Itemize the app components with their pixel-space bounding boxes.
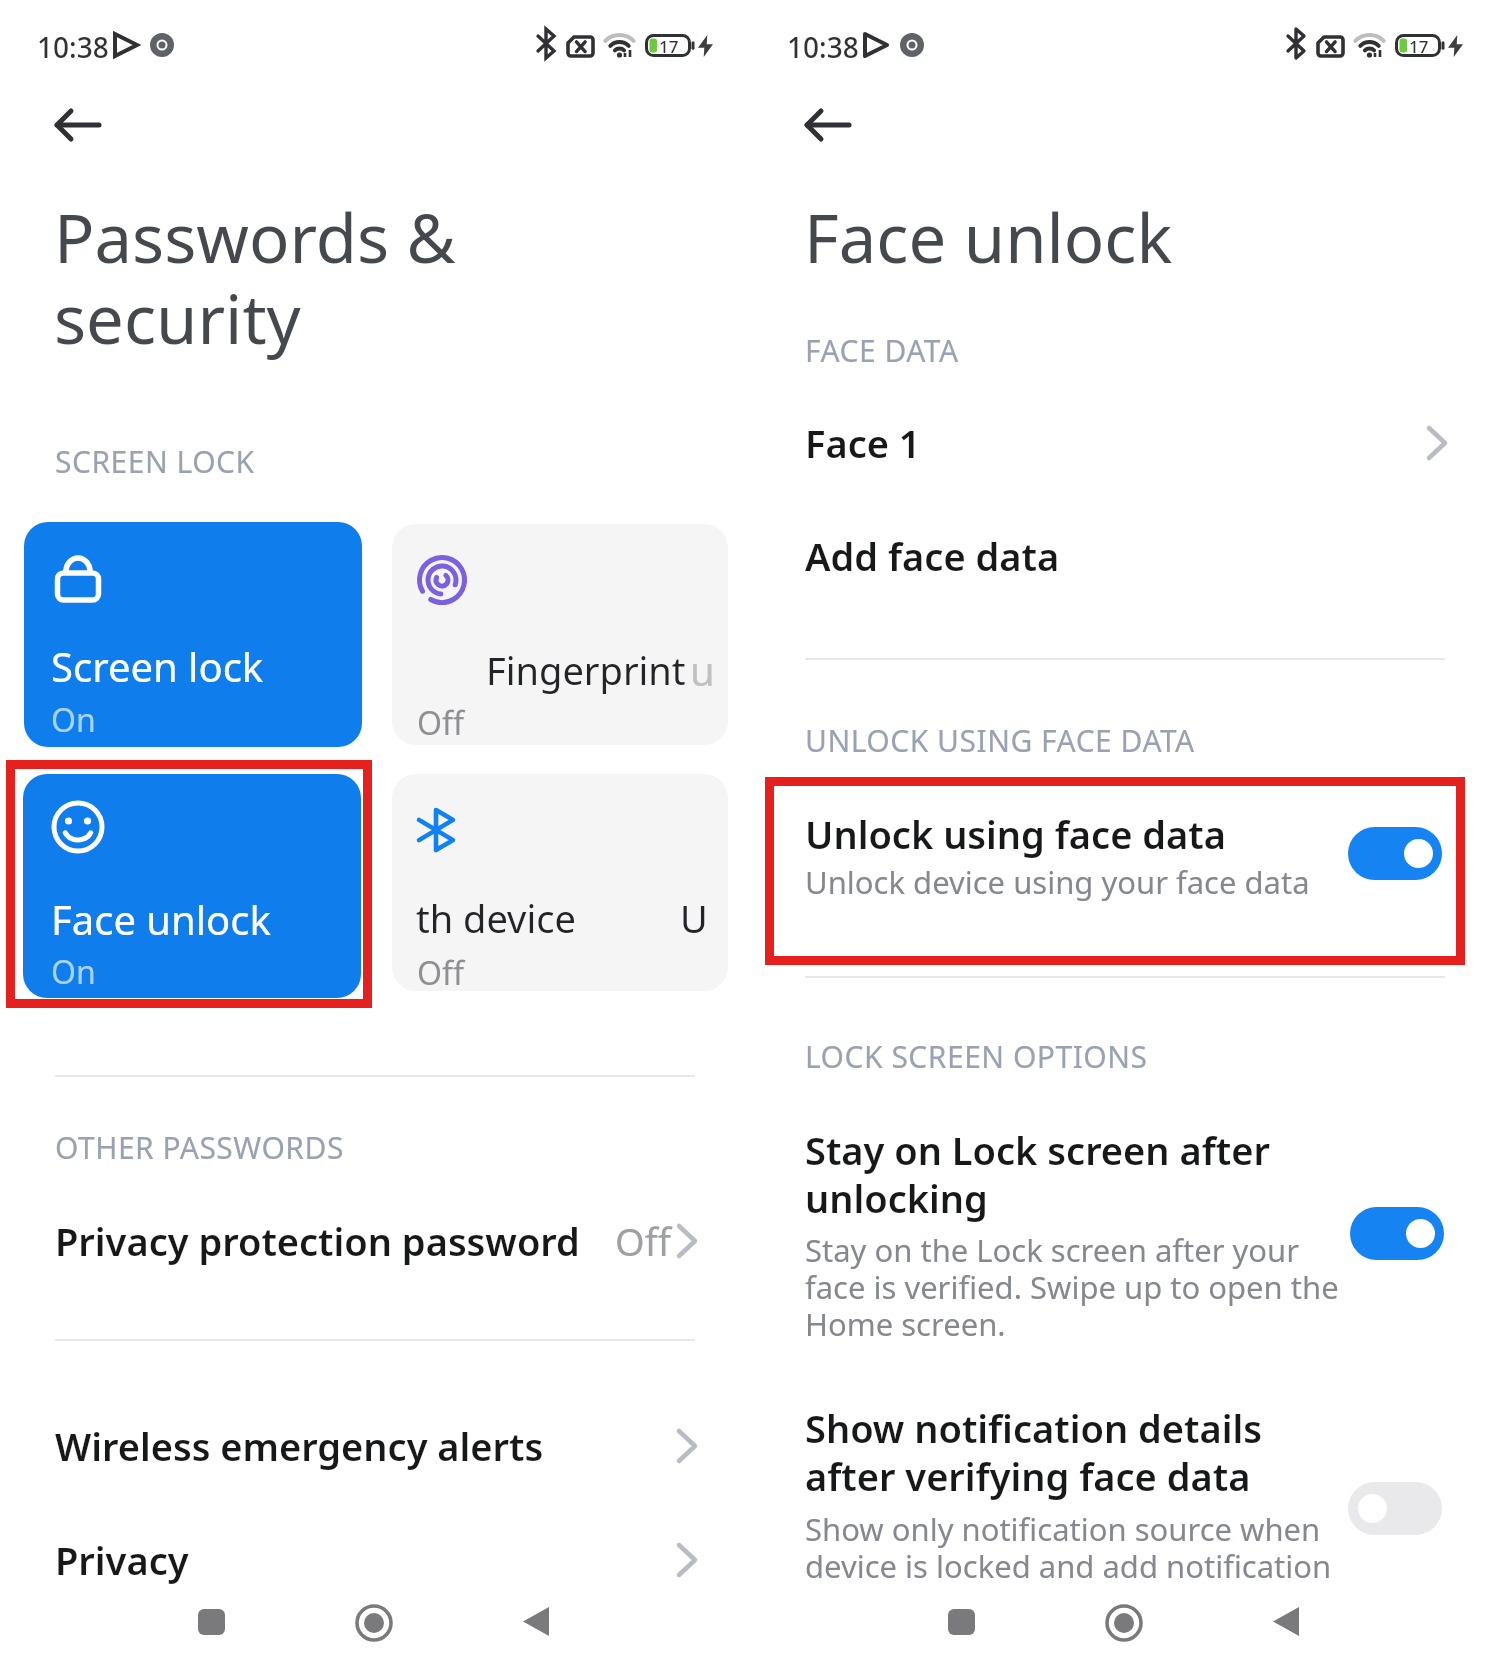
staticText: 17: [1409, 35, 1429, 58]
staticText: FACE DATA: [805, 330, 959, 371]
staticText: Face unlock: [804, 191, 1173, 282]
button[interactable]: [1104, 1603, 1144, 1643]
staticText: LOCK SCREEN OPTIONS: [805, 1036, 1148, 1077]
button[interactable]: Face unlock: [23, 774, 361, 998]
button[interactable]: Wireless emergency alerts: [0, 1386, 750, 1506]
button[interactable]: [1348, 1482, 1442, 1535]
staticText: Stay on the Lock screen after your face …: [805, 1229, 1339, 1345]
staticText: SCREEN LOCK: [55, 441, 255, 482]
button[interactable]: [1271, 1605, 1301, 1638]
staticText: Show notification details after verifyin…: [805, 1402, 1262, 1502]
button[interactable]: Face 1: [750, 385, 1500, 500]
staticText: Add face data: [805, 530, 1060, 582]
button[interactable]: [1348, 827, 1442, 880]
staticText: Privacy: [55, 1534, 189, 1586]
staticText: Off: [417, 701, 465, 745]
staticText: On: [51, 698, 96, 742]
staticText: U: [680, 892, 708, 944]
staticText: Face unlock: [51, 892, 271, 946]
button[interactable]: [354, 1603, 394, 1643]
staticText: Unlock using face data: [805, 808, 1226, 860]
staticText: UNLOCK USING FACE DATA: [805, 720, 1195, 761]
button[interactable]: Privacy protection password: [0, 1180, 750, 1302]
staticText: OTHER PASSWORDS: [55, 1127, 344, 1168]
staticText: 10:38: [787, 28, 859, 66]
staticText: Fingerprint: [486, 644, 686, 696]
button[interactable]: th device: [392, 774, 728, 991]
staticText: u: [690, 643, 715, 697]
staticText: Off: [417, 951, 465, 991]
button[interactable]: [1350, 1207, 1444, 1260]
button[interactable]: Add face data: [750, 500, 1500, 612]
staticText: 17: [659, 35, 679, 58]
button[interactable]: [805, 110, 851, 140]
staticText: Privacy protection password: [55, 1215, 580, 1267]
staticText: 10:38: [37, 28, 109, 66]
button[interactable]: Privacy: [0, 1500, 750, 1620]
staticText: Show only notification source when devic…: [805, 1508, 1332, 1587]
button[interactable]: [948, 1609, 975, 1635]
staticText: Face 1: [805, 417, 921, 469]
button[interactable]: [55, 110, 101, 140]
button[interactable]: [198, 1609, 225, 1635]
staticText: Off: [615, 1215, 671, 1267]
staticText: th device: [416, 892, 576, 944]
staticText: Stay on Lock screen after unlocking: [805, 1124, 1270, 1224]
button[interactable]: Fingerprint: [392, 524, 728, 745]
button[interactable]: Screen lock: [24, 522, 362, 747]
button[interactable]: [750, 1100, 1500, 1350]
staticText: Passwords & security: [54, 191, 456, 364]
staticText: Unlock device using your face data: [805, 861, 1310, 903]
button[interactable]: [521, 1605, 551, 1638]
staticText: Wireless emergency alerts: [55, 1420, 544, 1472]
staticText: On: [51, 950, 96, 994]
staticText: Screen lock: [51, 639, 264, 693]
